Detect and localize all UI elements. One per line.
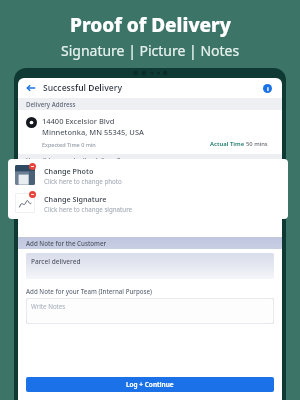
button[interactable]: Parcel delivered: [26, 253, 274, 279]
staticText: Actual Time: [210, 140, 246, 148]
staticText: Add Note for your Team (Internal Purpose…: [26, 287, 153, 295]
staticText: Change Photo: [44, 166, 94, 176]
staticText: Click here to change photo: [44, 177, 122, 185]
button[interactable]: Back: [24, 81, 38, 95]
staticText: 14400 Excelsior Blvd: [42, 116, 115, 126]
button[interactable]: Information: [260, 81, 274, 95]
button[interactable]: Remove: [14, 163, 288, 187]
staticText: Change Signature: [44, 194, 107, 204]
staticText: Proof of Delivery: [70, 12, 231, 38]
staticText: Add Note for the Customer: [26, 239, 107, 247]
staticText: Minnetonka, MN 55345, USA: [42, 127, 144, 137]
staticText: Click here to change signature: [44, 205, 133, 213]
staticText: Signature | Picture | Notes: [61, 41, 240, 60]
staticText: Write Notes: [31, 302, 66, 310]
button[interactable]: 14400 Excelsior Blvd: [26, 116, 274, 148]
button[interactable]: Remove: [29, 191, 36, 198]
button[interactable]: Back: [18, 78, 282, 98]
staticText: Expected Time 0 min: [42, 141, 96, 148]
button[interactable]: Delivered to intended customer: [26, 171, 282, 181]
button[interactable]: Remove: [14, 191, 288, 215]
staticText: Log + Continue: [126, 380, 174, 389]
button[interactable]: Log + Continue: [26, 377, 274, 392]
staticText: Delivered to intended customer: [36, 171, 141, 181]
staticText: How did you make the delivery?: [26, 156, 121, 164]
button[interactable]: Remove: [29, 163, 36, 170]
staticText: Parcel delivered: [31, 257, 81, 266]
staticText: Successful Delivery: [43, 82, 123, 94]
staticText: Delivery Address: [26, 100, 76, 108]
button[interactable]: Write Notes: [26, 298, 274, 324]
staticText: 50 mins: [246, 140, 268, 148]
staticText: i: [267, 85, 269, 93]
